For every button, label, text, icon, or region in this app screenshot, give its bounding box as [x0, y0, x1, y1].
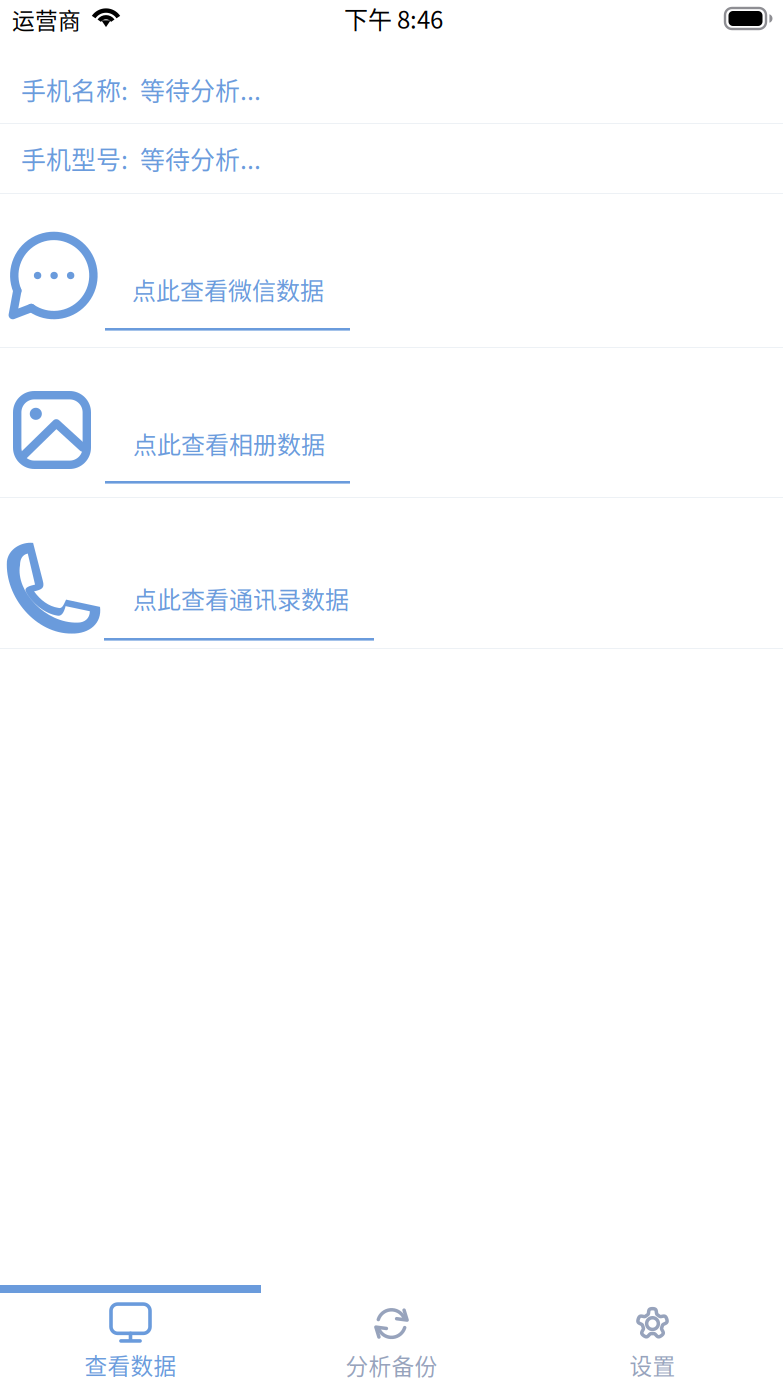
staticText: 点此查看相册数据: [133, 426, 325, 461]
staticText: 点此查看通讯录数据: [133, 581, 349, 616]
button[interactable]: 手机名称: 等待分析...: [0, 56, 783, 124]
button[interactable]: 点此查看通讯录数据: [0, 498, 783, 649]
staticText: 设置: [629, 1348, 675, 1381]
button[interactable]: 点此查看微信数据: [0, 194, 783, 348]
staticText: 点此查看微信数据: [132, 272, 324, 307]
staticText: 查看数据: [84, 1348, 176, 1381]
button[interactable]: 设置: [522, 1293, 783, 1392]
button[interactable]: 分析备份: [261, 1293, 522, 1392]
staticText: 分析备份: [345, 1349, 437, 1381]
staticText: 下午 8:46: [344, 1, 443, 36]
button[interactable]: 手机型号: 等待分析...: [0, 124, 783, 194]
button[interactable]: 查看数据: [0, 1293, 261, 1392]
button[interactable]: 点此查看相册数据: [0, 348, 783, 498]
staticText: 手机型号: 等待分析...: [21, 140, 261, 176]
staticText: 运营商: [12, 3, 81, 36]
staticText: 手机名称: 等待分析...: [21, 71, 261, 107]
